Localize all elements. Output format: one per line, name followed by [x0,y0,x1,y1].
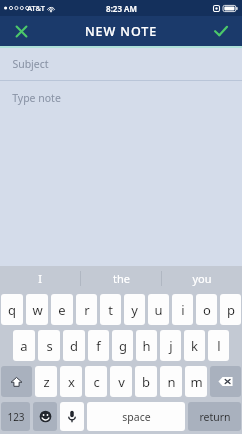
button[interactable]: r [76,294,97,325]
staticText: v [118,373,125,391]
button[interactable]: n [160,366,182,397]
staticText: y [131,301,138,319]
button[interactable]: d [63,330,85,361]
button[interactable]: u [148,294,169,325]
staticText: AT&T [27,3,45,13]
staticText: d [70,337,78,355]
button[interactable]: 123 [1,402,30,431]
staticText: j [169,337,173,355]
staticText: NEW NOTE [85,23,157,40]
button[interactable]: q [1,294,23,325]
button[interactable]: return [188,402,241,431]
staticText: e [58,301,66,319]
button[interactable]: h [136,330,157,361]
staticText: q [8,301,16,319]
button[interactable]: p [220,294,241,325]
staticText: return [199,410,231,424]
button[interactable]: s [38,330,60,361]
button[interactable]: Shift [1,366,32,397]
staticText: z [43,373,50,391]
staticText: b [142,373,150,391]
staticText: Type note [12,91,61,105]
staticText: I [38,271,42,286]
button[interactable]: g [112,330,133,361]
staticText: w [32,301,43,319]
staticText: p [227,301,235,319]
button[interactable]: j [160,330,181,361]
staticText: r [84,301,90,319]
button[interactable]: b [135,366,157,397]
button[interactable]: Cancel [0,16,42,46]
staticText: h [142,337,151,355]
staticText: t [108,301,113,319]
staticText: a [20,337,28,355]
button[interactable]: t [100,294,121,325]
staticText: o [203,301,211,319]
staticText: 8:23 AM [106,3,137,14]
button[interactable]: f [88,330,109,361]
button[interactable]: Subject [0,48,242,80]
staticText: you [192,271,212,286]
staticText: k [191,337,198,355]
button[interactable]: w [26,294,48,325]
button[interactable]: v [110,366,132,397]
button[interactable]: m [185,366,207,397]
staticText: m [190,373,203,391]
button[interactable]: Dictate [60,402,84,431]
button[interactable]: I [0,266,80,291]
button[interactable]: o [196,294,217,325]
button[interactable]: a [13,330,35,361]
button[interactable]: y [124,294,145,325]
button[interactable]: i [172,294,193,325]
staticText: g [119,337,127,355]
button[interactable]: Emoji [33,402,57,431]
staticText: c [93,373,100,391]
staticText: i [181,301,185,319]
staticText: f [96,337,101,355]
button[interactable]: Save note [200,16,242,46]
staticText: n [167,373,176,391]
button[interactable]: e [51,294,73,325]
staticText: u [154,301,163,319]
button[interactable]: space [87,402,185,431]
button[interactable]: you [162,266,242,291]
staticText: space [122,410,151,424]
button[interactable]: Backspace [210,366,241,397]
staticText: the [113,271,130,286]
button[interactable]: Type note [0,81,242,266]
staticText: l [217,337,221,355]
button[interactable]: l [208,330,229,361]
button[interactable]: the [81,266,161,291]
button[interactable]: z [35,366,57,397]
button[interactable]: c [85,366,107,397]
button[interactable]: x [60,366,82,397]
staticText: Subject [12,57,49,71]
staticText: 123 [7,410,25,424]
staticText: s [46,337,53,355]
staticText: x [68,373,75,391]
button[interactable]: k [184,330,205,361]
